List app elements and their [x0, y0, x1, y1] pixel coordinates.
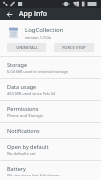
staticText: Phone and Storage	[7, 113, 43, 118]
button[interactable]: FORCE STOP	[54, 43, 94, 52]
button[interactable]: UNINSTALL	[7, 43, 46, 52]
button[interactable]: Back	[3, 8, 15, 20]
staticText: App info	[19, 9, 48, 19]
staticText: Notifications	[7, 127, 40, 134]
staticText: No defaults set	[7, 151, 36, 156]
staticText: 463 MB used since Feb 24	[7, 91, 56, 96]
staticText: FORCE STOP	[62, 45, 86, 50]
button[interactable]: Permissions	[0, 101, 101, 122]
staticText: LogCollection	[25, 26, 64, 34]
staticText: Open by default	[7, 143, 49, 150]
button[interactable]: Notifications	[0, 123, 101, 138]
button[interactable]: Storage	[0, 57, 101, 78]
staticText: Permissions	[7, 105, 39, 112]
staticText: 6.04 MB used in internal storage	[7, 69, 68, 74]
button[interactable]: Data usage	[0, 79, 101, 100]
staticText: 0% use since last full charge	[7, 173, 60, 176]
staticText: Data usage	[7, 83, 37, 90]
staticText: Battery	[7, 165, 26, 172]
staticText: UNINSTALL	[16, 45, 38, 50]
staticText: Storage	[7, 61, 28, 68]
staticText: version 1.0.0a	[25, 35, 52, 40]
button[interactable]: Open by default	[0, 139, 101, 160]
button[interactable]: Battery	[0, 161, 101, 180]
